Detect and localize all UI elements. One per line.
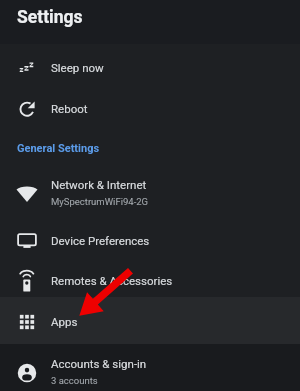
- button[interactable]: [0, 46, 300, 88]
- staticText: Device Preferences: [51, 234, 150, 247]
- staticText: Network & Internet: [51, 178, 147, 191]
- button[interactable]: [0, 164, 300, 212]
- staticText: Settings: [17, 7, 83, 28]
- staticText: MySpectrumWiFi94-2G: [51, 196, 149, 207]
- staticText: Apps: [51, 315, 78, 328]
- staticText: 3 accounts: [51, 375, 98, 386]
- staticText: Reboot: [51, 102, 88, 115]
- staticText: Remotes & Accessories: [51, 274, 173, 287]
- button[interactable]: [0, 260, 300, 297]
- staticText: Sleep now: [51, 61, 104, 74]
- button[interactable]: Settings: [0, 0, 300, 44]
- button[interactable]: [0, 219, 300, 260]
- button[interactable]: [0, 344, 300, 391]
- staticText: General Settings: [17, 142, 100, 155]
- button[interactable]: [0, 88, 300, 129]
- button[interactable]: [0, 297, 300, 344]
- staticText: Accounts & sign-in: [51, 357, 147, 370]
